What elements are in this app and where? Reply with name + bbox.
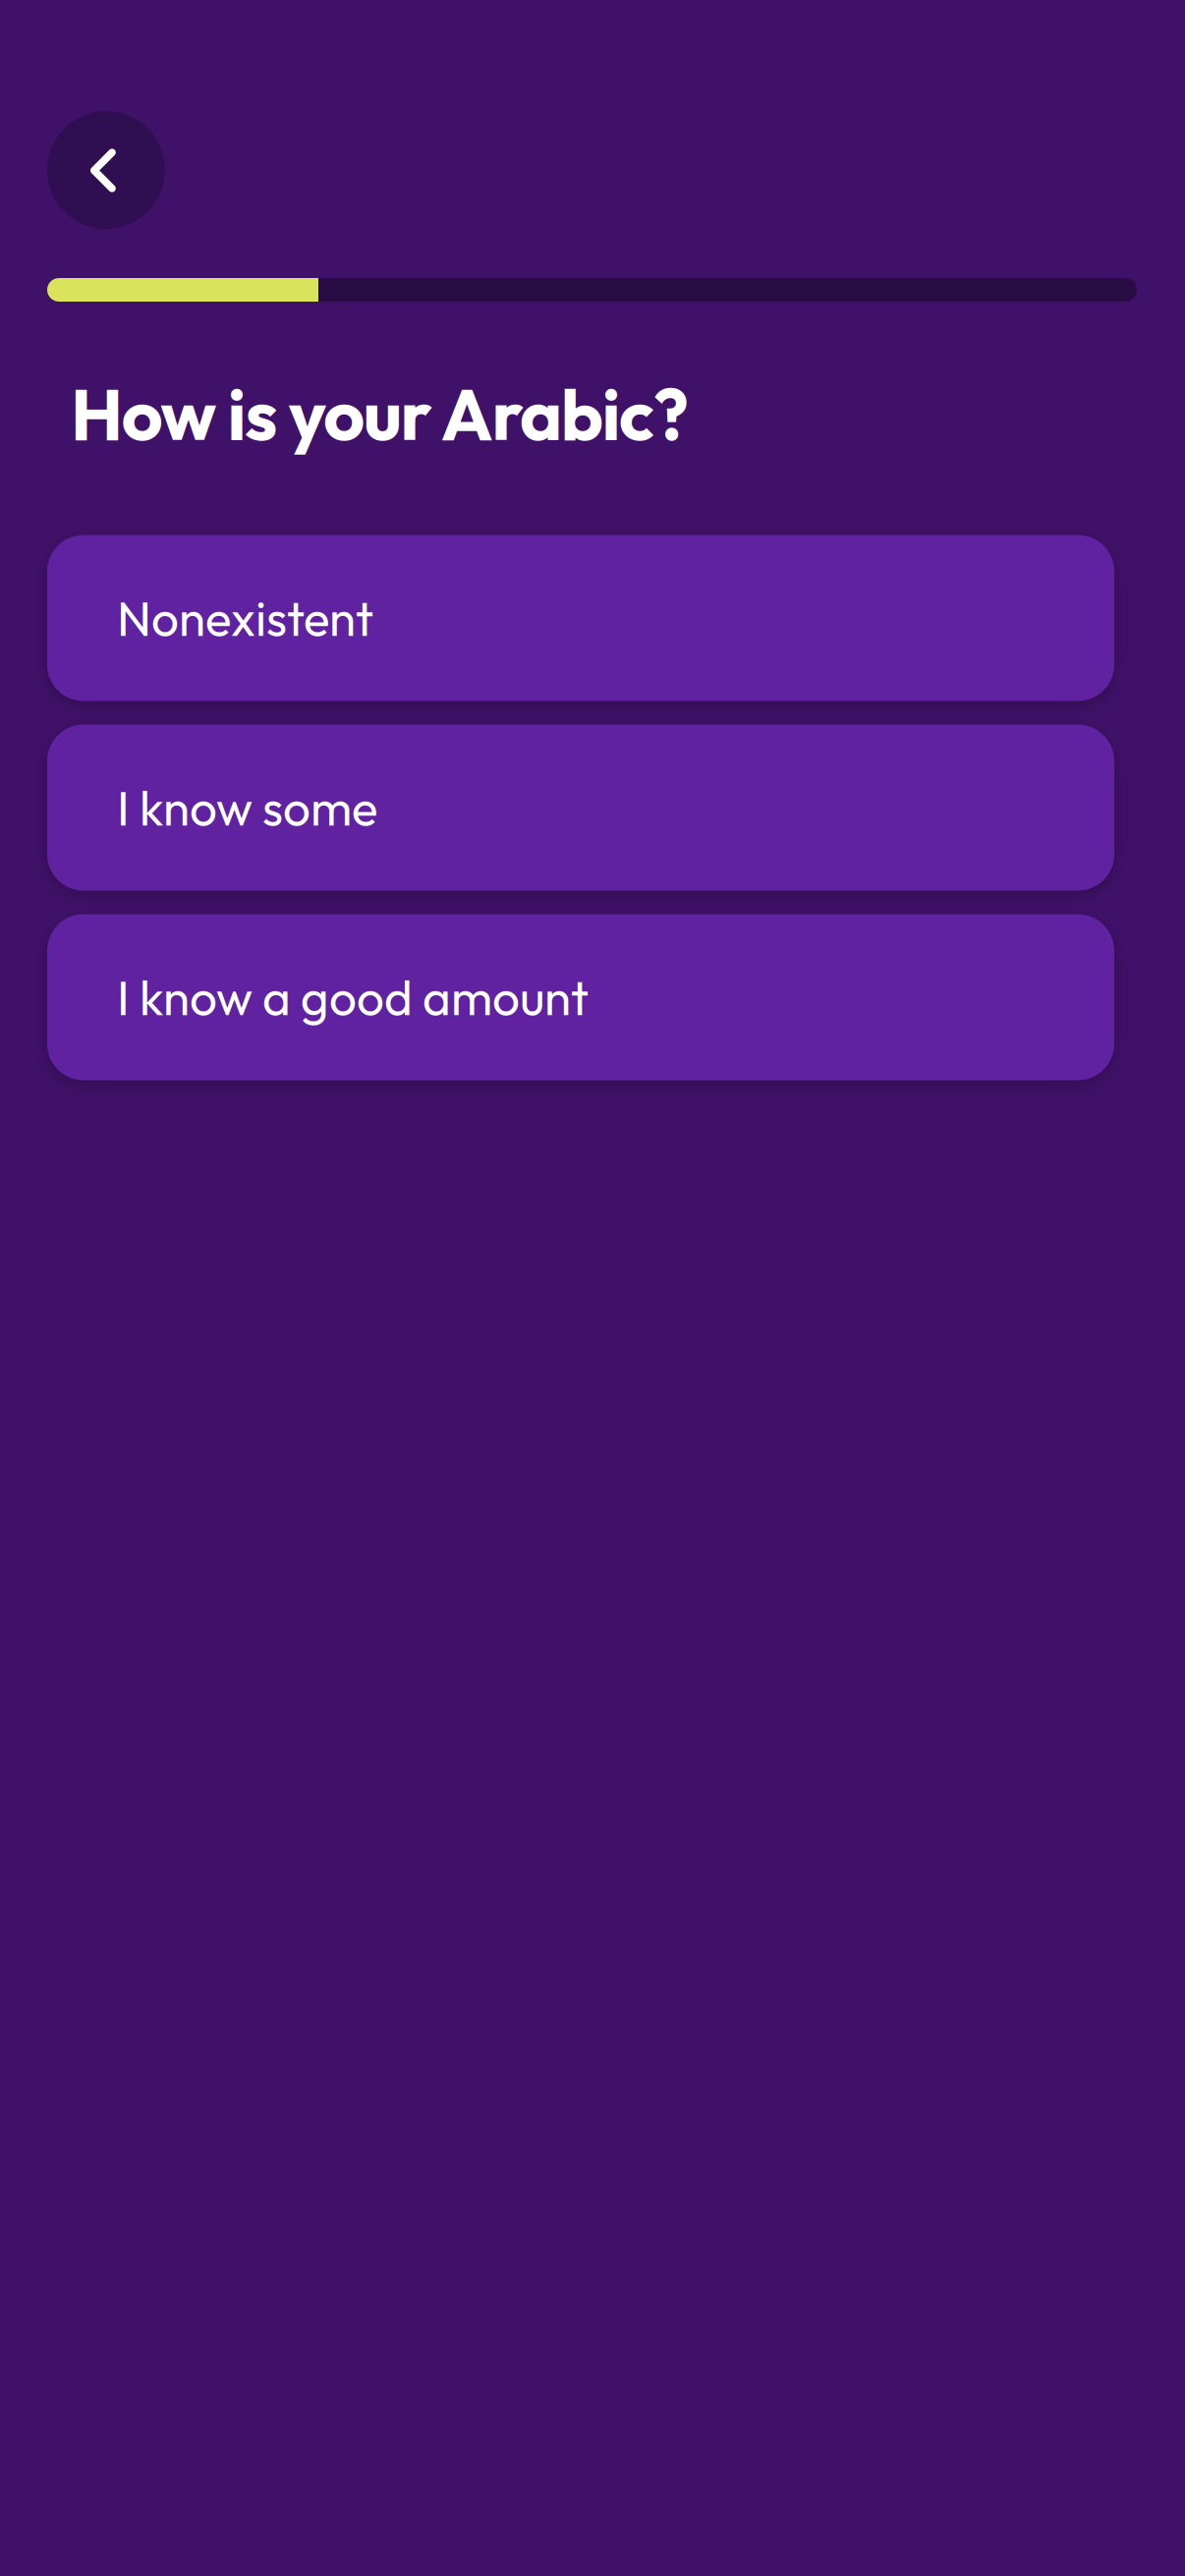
button[interactable]: I know some	[47, 725, 1114, 891]
staticText: I know some	[117, 777, 377, 838]
staticText: How is your Arabic?	[71, 368, 688, 458]
staticText: Nonexistent	[117, 588, 373, 649]
button[interactable]: Nonexistent	[47, 535, 1114, 701]
button[interactable]: Back	[47, 111, 165, 229]
button[interactable]: I know a good amount	[47, 914, 1114, 1080]
staticText: I know a good amount	[117, 967, 589, 1028]
